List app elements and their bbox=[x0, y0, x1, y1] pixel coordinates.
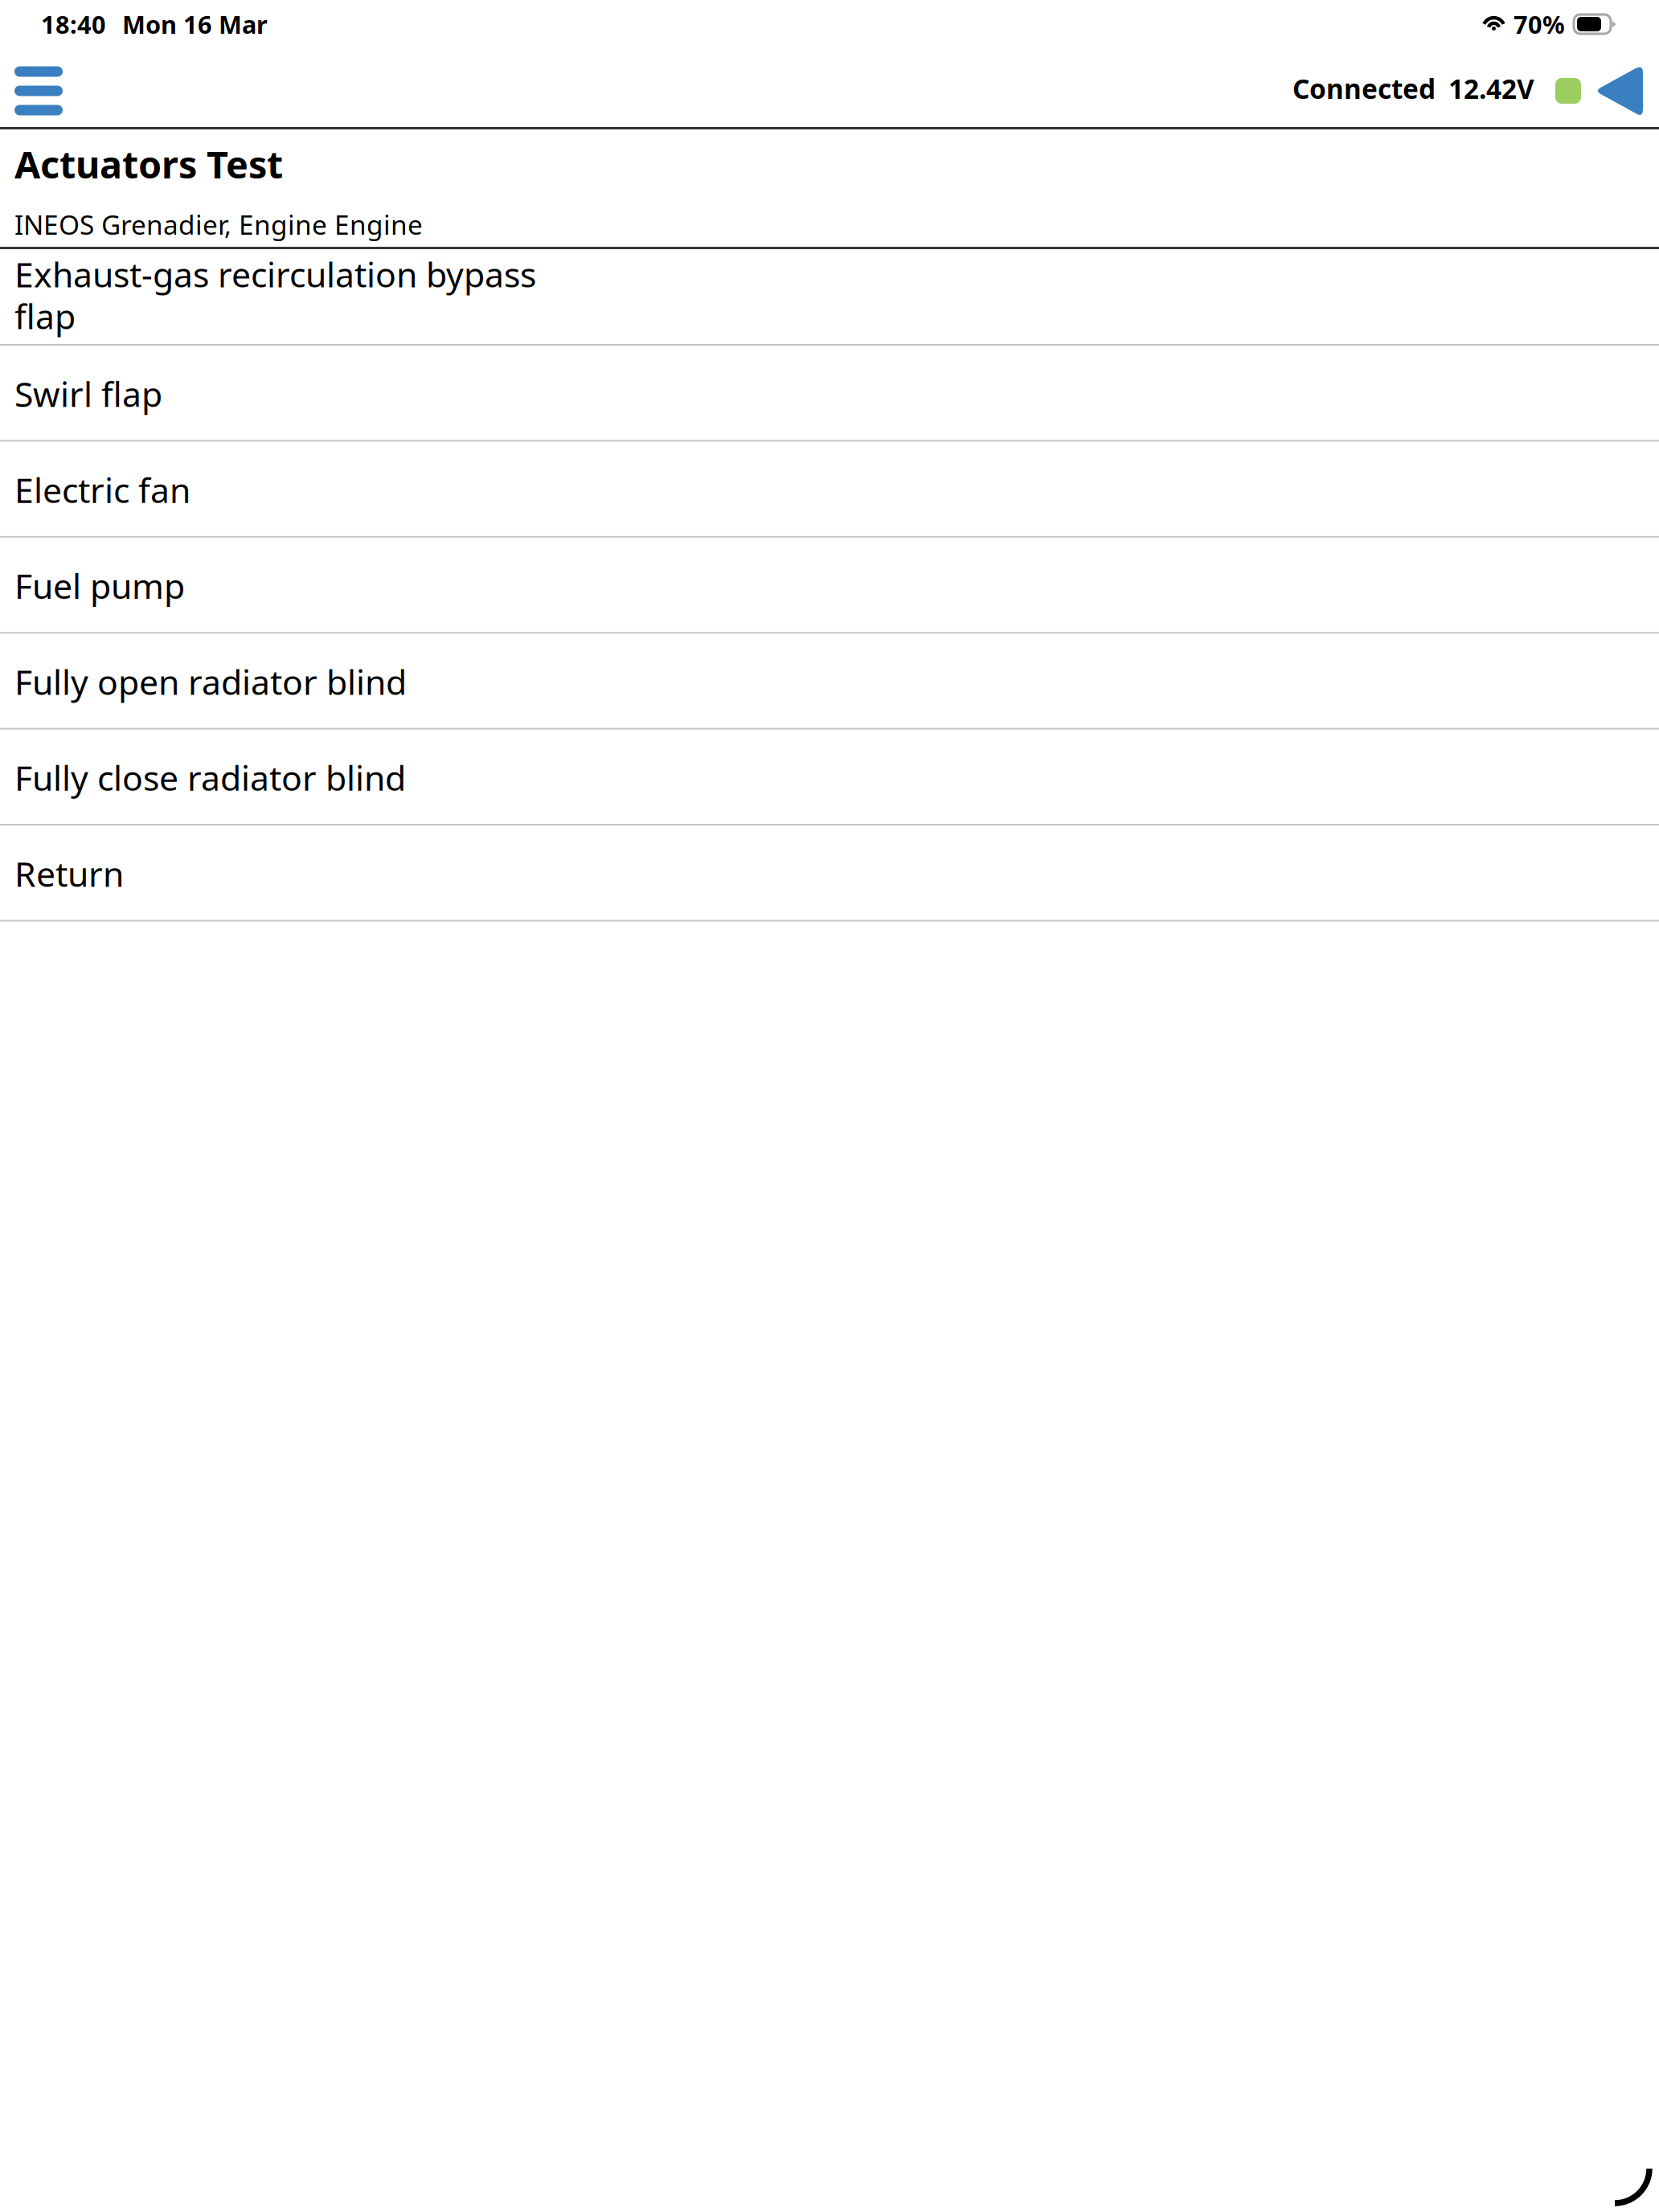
button[interactable]: Exhaust-gas recirculation bypass bbox=[0, 249, 1659, 346]
staticText: 18:40 bbox=[41, 8, 106, 40]
button[interactable]: Fully close radiator blind bbox=[0, 730, 1659, 825]
staticText: 12.42V bbox=[1448, 71, 1534, 106]
staticText: Fully close radiator blind bbox=[14, 755, 406, 800]
button[interactable]: Electric fan bbox=[0, 442, 1659, 538]
staticText: Electric fan bbox=[14, 467, 190, 512]
staticText: Fully open radiator blind bbox=[14, 659, 407, 704]
button[interactable]: Menu bbox=[0, 52, 82, 129]
staticText: INEOS Grenadier, Engine Engine bbox=[14, 206, 423, 242]
staticText: flap bbox=[14, 293, 76, 339]
button[interactable]: Return bbox=[0, 825, 1659, 921]
button[interactable]: Fuel pump bbox=[0, 538, 1659, 634]
staticText: Connected bbox=[1292, 71, 1436, 106]
button[interactable]: Back bbox=[1581, 52, 1659, 129]
button[interactable]: Swirl flap bbox=[0, 346, 1659, 442]
staticText: Return bbox=[14, 851, 124, 896]
staticText: Exhaust-gas recirculation bypass bbox=[14, 251, 536, 297]
staticText: 70% bbox=[1514, 8, 1565, 40]
staticText: Swirl flap bbox=[14, 371, 162, 416]
staticText: Actuators Test bbox=[14, 139, 283, 189]
staticText: Fuel pump bbox=[14, 563, 185, 608]
button[interactable]: Fully open radiator blind bbox=[0, 634, 1659, 730]
staticText: Mon 16 Mar bbox=[122, 8, 268, 40]
